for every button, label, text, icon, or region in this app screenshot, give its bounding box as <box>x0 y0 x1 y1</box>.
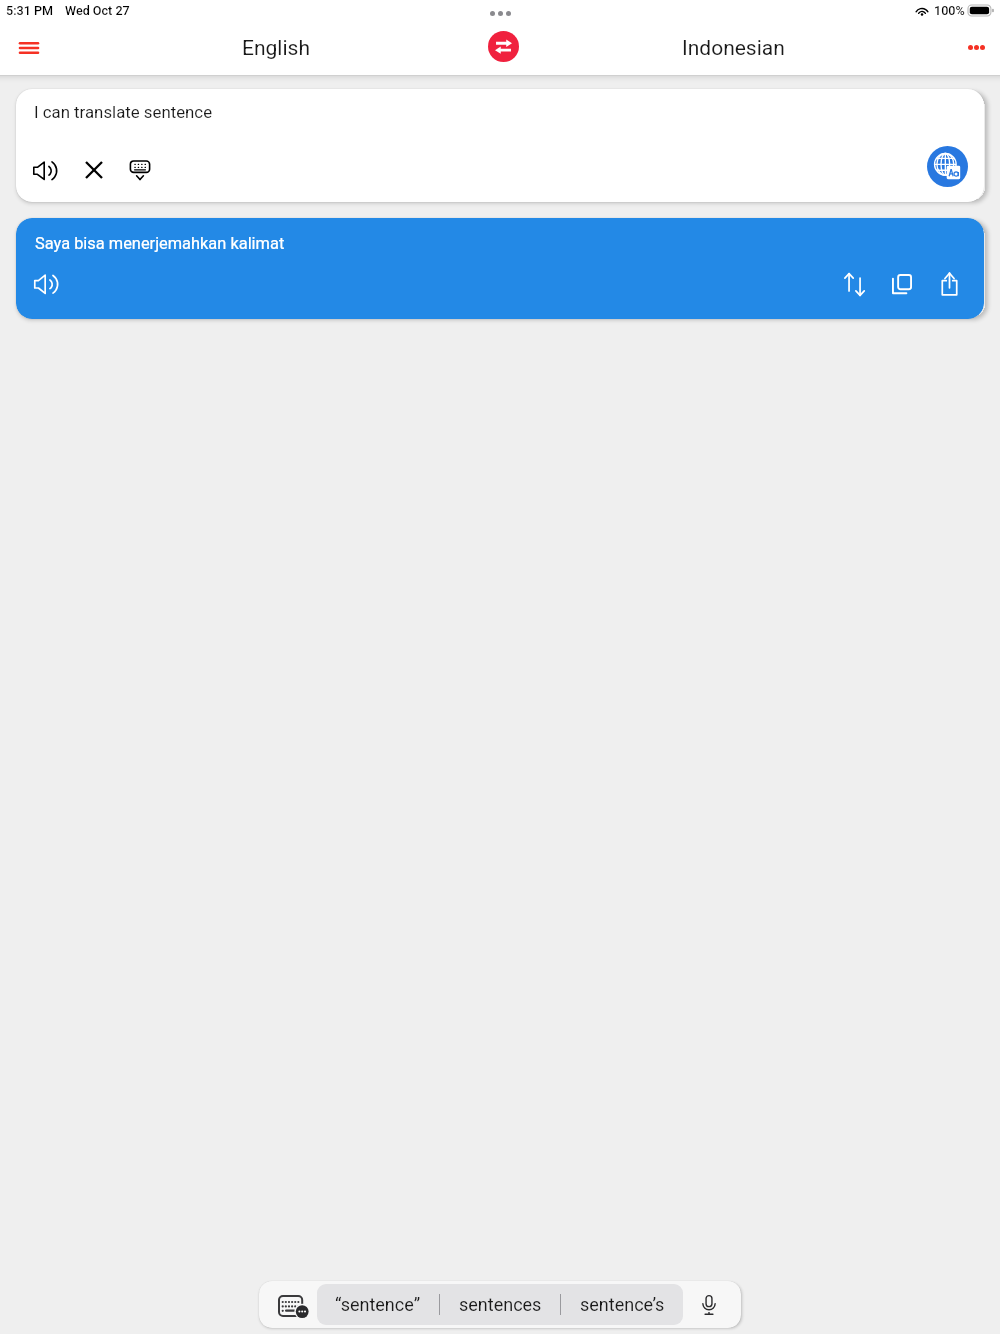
button[interactable]: Clear <box>71 147 117 193</box>
button[interactable]: Reverse translation <box>832 261 878 307</box>
button[interactable]: Swap languages <box>488 31 519 62</box>
button[interactable]: Speak <box>23 147 69 193</box>
staticText: Wed Oct 27 <box>65 3 130 18</box>
button[interactable]: sentences <box>440 1284 560 1325</box>
staticText: English <box>242 36 310 61</box>
button[interactable]: Share <box>926 261 972 307</box>
button[interactable]: sentence’s <box>561 1284 683 1325</box>
button[interactable]: Indonesian <box>668 28 798 68</box>
button[interactable]: Dictate <box>683 1281 741 1328</box>
staticText: I can translate sentence <box>34 102 213 122</box>
button[interactable]: Hide keyboard <box>117 147 163 193</box>
staticText: Saya bisa menerjemahkan kalimat <box>35 234 285 253</box>
button[interactable]: Menu <box>6 25 51 70</box>
button[interactable]: More options <box>962 29 990 65</box>
button[interactable]: Translate <box>927 146 968 187</box>
staticText: “sentence” <box>335 1294 421 1315</box>
staticText: 5:31 PM <box>6 3 53 18</box>
staticText: 100% <box>934 3 965 18</box>
button[interactable]: “sentence” <box>317 1284 439 1325</box>
button[interactable]: Speak translation <box>24 261 70 307</box>
button[interactable]: Keyboard settings <box>259 1281 317 1328</box>
button[interactable]: Copy <box>879 261 925 307</box>
staticText: sentence’s <box>580 1294 665 1315</box>
staticText: sentences <box>459 1294 542 1315</box>
staticText: Indonesian <box>682 36 785 61</box>
button[interactable]: English <box>228 28 324 68</box>
